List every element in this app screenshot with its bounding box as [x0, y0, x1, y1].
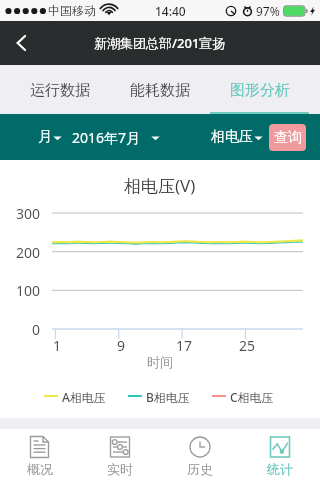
staticText: 97%	[256, 3, 280, 19]
button[interactable]: 能耗数据	[110, 65, 210, 114]
staticText: 200	[16, 243, 41, 262]
staticText: 相电压	[211, 128, 253, 146]
button[interactable]: 历史	[160, 429, 240, 480]
staticText: 能耗数据	[130, 81, 190, 100]
button[interactable]: 查询	[269, 124, 306, 151]
staticText: 图形分析	[230, 81, 290, 100]
staticText: 运行数据	[30, 81, 90, 100]
staticText: C相电压	[230, 389, 274, 405]
staticText: 查询	[274, 129, 302, 147]
staticText: A相电压	[62, 389, 106, 405]
button[interactable]: 实时	[80, 429, 160, 480]
button[interactable]: 相电压	[211, 128, 264, 146]
staticText: 14:40	[155, 3, 186, 19]
staticText: 时间	[147, 354, 173, 370]
staticText: 300	[16, 204, 41, 223]
staticText: 9	[117, 336, 126, 355]
staticText: 1	[53, 336, 62, 355]
staticText: 100	[16, 281, 41, 300]
button[interactable]: 月	[38, 128, 63, 146]
staticText: 中国移动	[48, 3, 96, 18]
button[interactable]: 图形分析	[210, 65, 310, 114]
button[interactable]: 统计	[240, 429, 320, 480]
staticText: 概况	[27, 461, 53, 477]
staticText: 0	[32, 320, 41, 339]
staticText: 25	[239, 336, 256, 355]
staticText: 新潮集团总部/201宣扬	[94, 34, 226, 52]
button[interactable]: 概况	[0, 429, 80, 480]
staticText: 实时	[107, 461, 133, 477]
staticText: 17	[176, 336, 193, 355]
staticText: 相电压(V)	[124, 174, 196, 197]
staticText: 2016年7月	[72, 128, 141, 147]
staticText: 历史	[187, 461, 213, 477]
button[interactable]: 运行数据	[10, 65, 110, 114]
button[interactable]: 2016年7月	[72, 128, 161, 147]
staticText: B相电压	[146, 389, 190, 405]
staticText: 统计	[267, 461, 293, 477]
staticText: 月	[38, 128, 52, 146]
button[interactable]: Back	[0, 21, 44, 65]
